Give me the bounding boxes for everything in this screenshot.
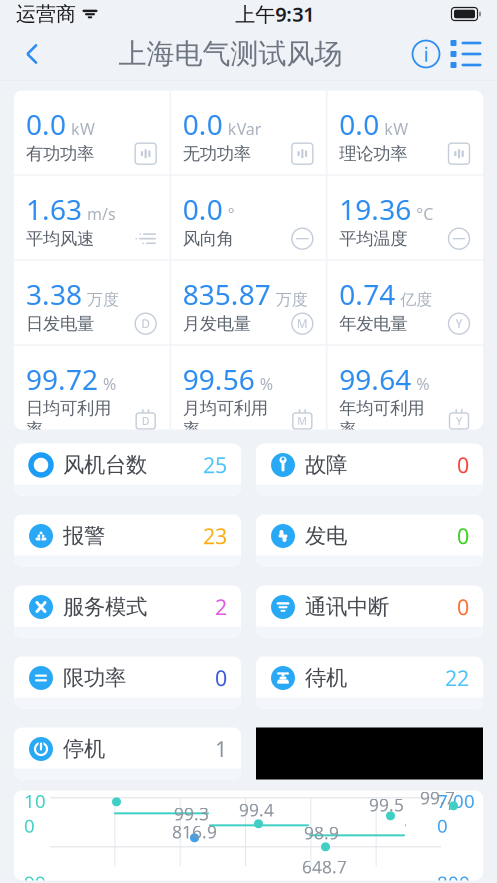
button[interactable]: 0.74 [327, 260, 483, 344]
staticText: 万度 [276, 290, 308, 309]
button[interactable]: 停机 [14, 727, 241, 779]
staticText: 年均可利用率 [339, 398, 424, 440]
staticText: 理论功率 [339, 143, 407, 164]
staticText: 23 [203, 522, 227, 550]
staticText: 99.64 [339, 360, 411, 398]
staticText: D [142, 414, 150, 428]
staticText: 0.0 [183, 105, 223, 143]
staticText: 运营商 [16, 2, 76, 26]
button[interactable]: 风机台数 [14, 443, 241, 495]
staticText: 0.0 [183, 190, 223, 228]
staticText: D [141, 316, 150, 332]
staticText: 0.0 [339, 105, 379, 143]
staticText: 25 [203, 451, 227, 479]
button[interactable]: 0.0 [171, 90, 326, 174]
staticText: Y [455, 316, 462, 332]
staticText: M [297, 414, 307, 428]
button[interactable]: 返回 [10, 32, 54, 76]
staticText: 风机台数 [63, 452, 147, 478]
staticText: 7,000 [437, 788, 475, 838]
staticText: % [416, 373, 429, 394]
staticText: 报警 [63, 523, 105, 549]
button[interactable]: 835.87 [171, 260, 326, 344]
staticText: 无功功率 [183, 143, 251, 164]
button[interactable]: 19.36 [327, 175, 483, 259]
button[interactable]: 0.0 [327, 90, 483, 174]
staticText: 平均温度 [339, 228, 407, 249]
staticText: 服务模式 [63, 594, 147, 620]
staticText: 上海电气测试风场 [118, 37, 342, 71]
staticText: % [260, 373, 273, 394]
button[interactable]: 99.72 [14, 345, 170, 429]
staticText: 99.56 [183, 360, 255, 398]
staticText: 99.3 [174, 802, 209, 825]
staticText: 发电 [305, 523, 347, 549]
staticText: 1 [215, 735, 227, 763]
staticText: 日发电量 [26, 313, 94, 334]
staticText: 3.38 [26, 275, 82, 313]
staticText: 月均可利用率 [183, 398, 268, 440]
button[interactable]: 1.63 [14, 175, 170, 259]
staticText: i [423, 41, 428, 67]
staticText: 22 [445, 664, 469, 692]
staticText: 99.4 [239, 798, 274, 821]
staticText: kW [71, 118, 95, 139]
staticText: m/s [87, 203, 116, 224]
button[interactable]: 服务模式 [14, 585, 241, 637]
staticText: 待机 [305, 665, 347, 691]
button[interactable]: 报警 [14, 514, 241, 566]
staticText: 故障 [305, 452, 347, 478]
staticText: 19.36 [339, 190, 411, 228]
button[interactable]: 3.38 [14, 260, 170, 344]
button[interactable]: 0.0 [14, 90, 170, 174]
staticText: 1.63 [26, 190, 82, 228]
staticText: 停机 [63, 736, 105, 762]
staticText: 100 [24, 788, 46, 838]
staticText: 0.0 [26, 105, 66, 143]
staticText: kVar [228, 118, 262, 139]
staticText: 800 [437, 870, 470, 883]
staticText: 648.7 [302, 855, 347, 878]
button[interactable]: 限功率 [14, 656, 241, 708]
staticText: Y [456, 414, 462, 428]
staticText: 平均风速 [26, 228, 94, 249]
button[interactable]: 待机 [256, 656, 483, 708]
staticText: 0 [457, 593, 469, 621]
button[interactable]: 发电 [256, 514, 483, 566]
staticText: 亿度 [400, 290, 432, 309]
staticText: 日均可利用率 [26, 398, 111, 440]
staticText: 限功率 [63, 665, 126, 691]
button[interactable]: 99.56 [171, 345, 326, 429]
button[interactable]: 通讯中断 [256, 585, 483, 637]
staticText: 上午9:31 [235, 1, 314, 27]
staticText: 年发电量 [339, 313, 407, 334]
staticText: 99.5 [369, 793, 404, 816]
staticText: 99.72 [26, 360, 98, 398]
staticText: 816.9 [172, 820, 217, 843]
staticText: 0 [457, 522, 469, 550]
staticText: 98.9 [304, 821, 339, 844]
staticText: 万度 [87, 290, 119, 309]
button[interactable]: 99.64 [327, 345, 483, 429]
staticText: 月发电量 [183, 313, 251, 334]
button[interactable]: 列表 [445, 32, 487, 76]
staticText: kW [384, 118, 408, 139]
staticText: 0.74 [339, 275, 395, 313]
staticText: 通讯中断 [305, 594, 389, 620]
button[interactable]: 故障 [256, 443, 483, 495]
button[interactable]: 0.0 [171, 175, 326, 259]
staticText: 835.87 [183, 275, 271, 313]
staticText: 99 [24, 870, 46, 883]
staticText: 2 [215, 593, 227, 621]
staticText: 0 [215, 664, 227, 692]
staticText: M [297, 316, 308, 332]
staticText: 风向角 [183, 228, 234, 249]
staticText: 0 [457, 451, 469, 479]
staticText: 有功功率 [26, 143, 94, 164]
staticText: ° [228, 203, 235, 224]
button[interactable]: 信息 [407, 32, 445, 76]
staticText: 99.7 [420, 786, 455, 809]
staticText: °C [416, 203, 433, 224]
staticText: % [103, 373, 116, 394]
